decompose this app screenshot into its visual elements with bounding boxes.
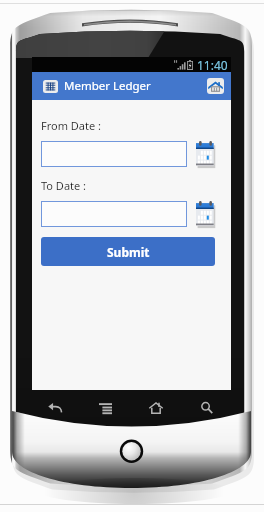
staticText: From Date :	[41, 118, 102, 133]
button[interactable]	[41, 201, 187, 227]
button[interactable]: Back	[30, 394, 80, 421]
button[interactable]: App icon	[43, 80, 58, 93]
staticText: To Date :	[41, 178, 87, 193]
button[interactable]: Pick date	[196, 140, 215, 167]
button[interactable]: Home	[130, 394, 181, 421]
button[interactable]: Menu	[80, 394, 130, 421]
staticText: Member Ledger	[64, 78, 151, 94]
staticText: Submit	[107, 244, 150, 260]
staticText: 11:40	[197, 57, 228, 72]
button[interactable]	[41, 141, 187, 167]
button[interactable]: Pick date	[196, 200, 215, 227]
button[interactable]: Search	[181, 394, 232, 421]
button[interactable]: Submit	[41, 237, 215, 266]
button[interactable]: Home	[207, 78, 224, 94]
